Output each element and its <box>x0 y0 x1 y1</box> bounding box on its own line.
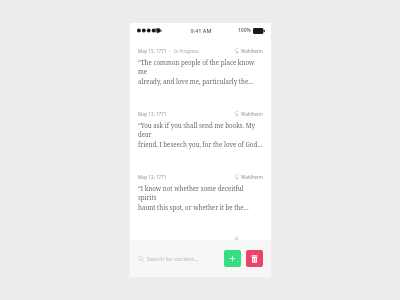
staticText: friend, I beseech you, for the love of G… <box>138 140 263 148</box>
button[interactable]: May 12, 1771 <box>130 172 271 213</box>
button[interactable]: Delete <box>246 250 263 267</box>
staticText: May 12, 1771 <box>138 174 167 180</box>
staticText: “You ask if you shall send me books. My … <box>138 121 263 139</box>
button[interactable]: Search for content… <box>138 251 224 266</box>
button[interactable]: May 15, 1771 <box>130 46 271 87</box>
button[interactable]: May 13, 1771 <box>130 109 271 150</box>
staticText: “The common people of the place know me <box>138 58 263 76</box>
staticText: 100% <box>238 27 251 34</box>
staticText: Wahlheim <box>241 111 263 117</box>
staticText: Search for content… <box>147 255 198 262</box>
staticText: Wahlheim <box>241 48 263 54</box>
staticText: already, and love me, particularly the… <box>138 77 254 85</box>
staticText: “I know not whether some deceitful spiri… <box>138 184 263 202</box>
staticText: · <box>167 48 174 54</box>
staticText: Wahlheim <box>241 174 263 180</box>
staticText: May 13, 1771 <box>138 111 167 117</box>
staticText: In Progress <box>174 48 199 54</box>
staticText: haunt this spot, or whether it be the… <box>138 203 249 211</box>
button[interactable]: May 10, 1771 <box>130 235 271 240</box>
staticText: 9:41 AM <box>190 27 212 34</box>
button[interactable]: Add entry <box>224 250 241 267</box>
staticText: May 15, 1771 <box>138 48 167 54</box>
